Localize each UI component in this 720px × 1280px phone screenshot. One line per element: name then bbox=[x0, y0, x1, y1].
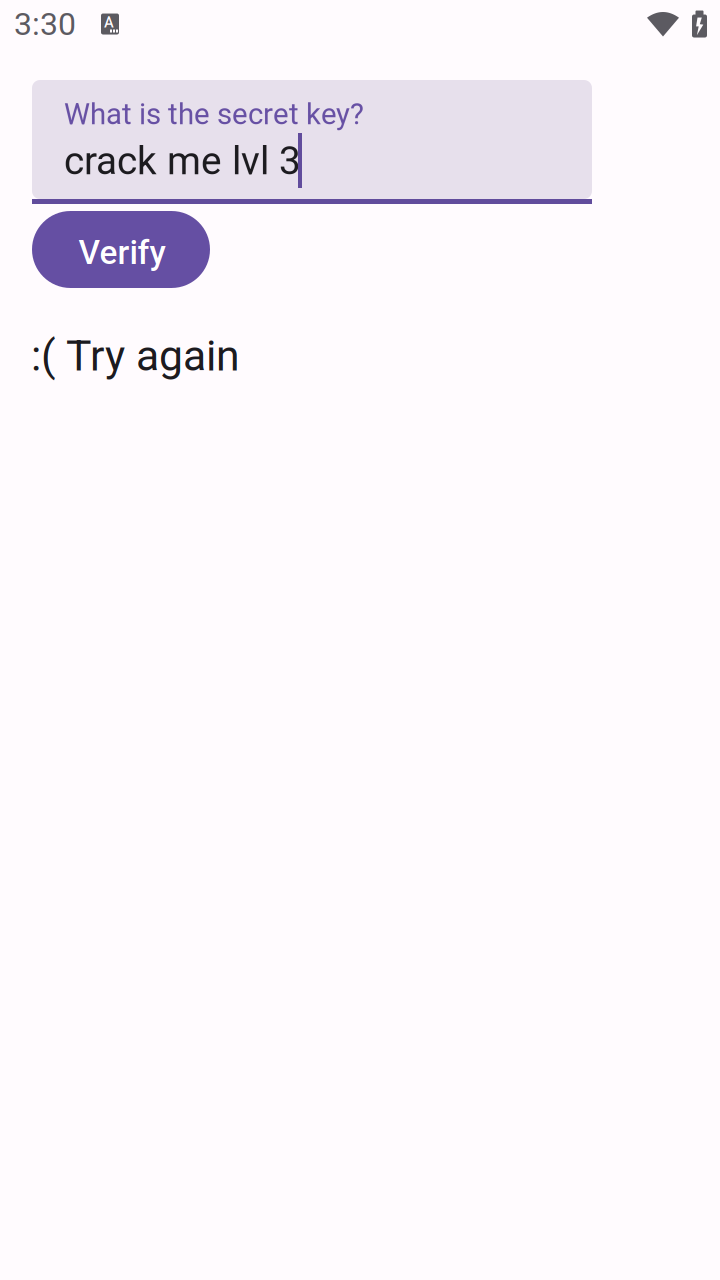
staticText: A bbox=[104, 14, 114, 31]
staticText: What is the secret key? bbox=[64, 97, 364, 131]
button[interactable]: Verify bbox=[32, 211, 210, 288]
staticText: crack me lvl 3 bbox=[64, 138, 301, 184]
staticText: :( Try again bbox=[31, 331, 240, 381]
textField[interactable]: crack me lvl 3 bbox=[32, 80, 592, 204]
staticText: 3:30 bbox=[14, 5, 76, 43]
staticText: Verify bbox=[78, 233, 165, 272]
